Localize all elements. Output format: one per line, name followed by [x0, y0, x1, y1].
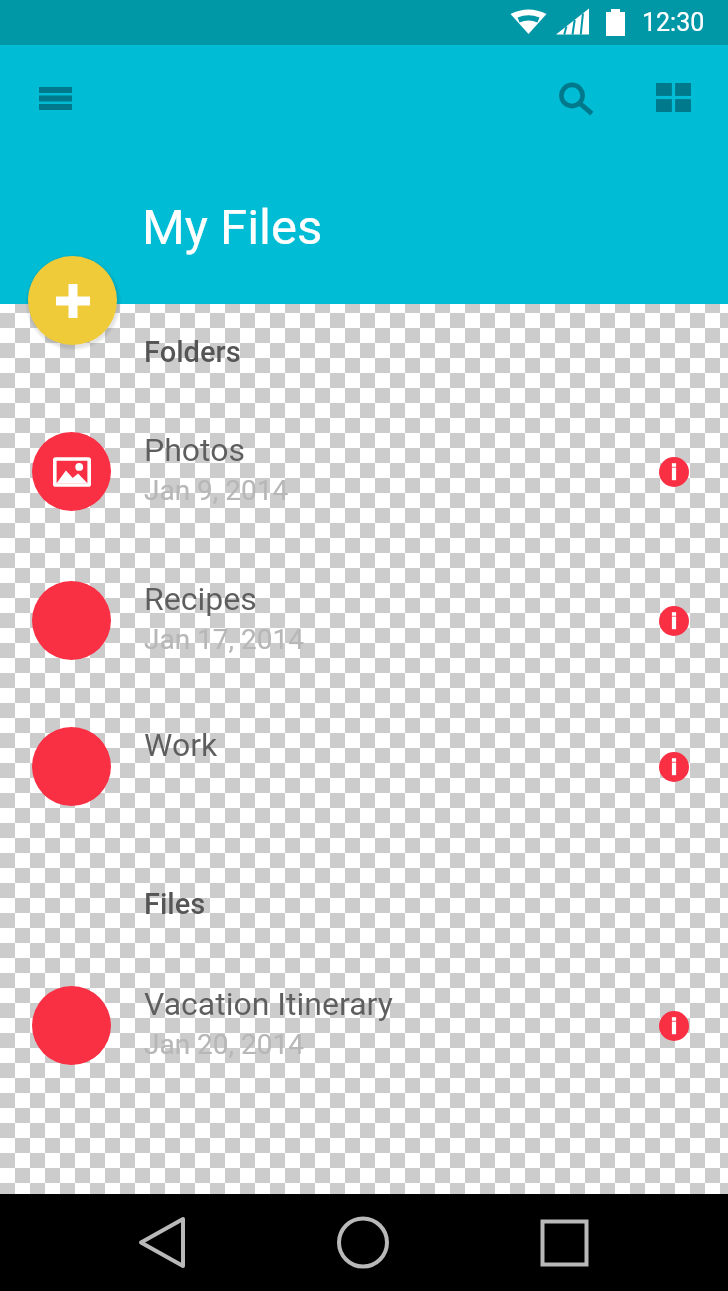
button[interactable]: Info: [651, 1003, 696, 1048]
button[interactable]: Back: [132, 1209, 194, 1271]
button[interactable]: Info: [651, 744, 696, 789]
staticText: Folders: [144, 335, 241, 369]
staticText: My Files: [142, 199, 323, 256]
button[interactable]: Info: [651, 449, 696, 494]
staticText: 12:30: [642, 8, 705, 37]
staticText: Files: [144, 887, 206, 921]
button[interactable]: Info: [651, 598, 696, 643]
staticText: Jan 9, 2014: [144, 474, 289, 507]
staticText: Photos: [144, 431, 245, 469]
button[interactable]: [0, 546, 728, 694]
staticText: Jan 17, 2014: [144, 623, 304, 656]
staticText: Work: [144, 726, 218, 764]
button[interactable]: Home: [333, 1212, 393, 1272]
button[interactable]: [0, 397, 728, 545]
button[interactable]: Menu: [25, 68, 85, 128]
staticText: Recipes: [144, 580, 257, 618]
staticText: Jan 20, 2014: [144, 1028, 304, 1061]
button[interactable]: Add: [28, 256, 117, 345]
staticText: Vacation Itinerary: [144, 985, 393, 1023]
button[interactable]: Recents: [534, 1212, 596, 1274]
button[interactable]: [0, 951, 728, 1099]
button[interactable]: Search: [542, 65, 602, 125]
button[interactable]: [0, 692, 728, 840]
button[interactable]: Grid view: [643, 67, 703, 127]
